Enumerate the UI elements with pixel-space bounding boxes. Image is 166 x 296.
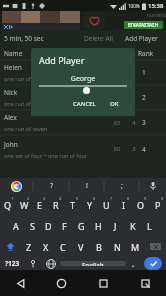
button[interactable]: Delete All: [80, 32, 117, 45]
staticText: John: [4, 140, 18, 149]
staticText: 5: [76, 196, 79, 201]
staticText: M: [131, 241, 140, 253]
staticText: ΕΓΚΑΤΑΣΤΑΣΗ: [128, 22, 159, 28]
button[interactable]: T: [64, 194, 81, 215]
button[interactable]: ;: [105, 178, 139, 194]
staticText: 4: [126, 119, 142, 127]
button[interactable]: P: [149, 194, 166, 215]
button[interactable]: D: [40, 215, 56, 236]
button[interactable]: ?: [34, 178, 69, 194]
staticText: V: [78, 241, 84, 253]
staticText: 6: [93, 196, 96, 201]
staticText: Helen: [4, 63, 22, 72]
staticText: [126, 94, 142, 102]
button[interactable]: M: [126, 236, 144, 257]
staticText: 100%: [128, 3, 140, 9]
staticText: [126, 69, 142, 77]
staticText: 3: [142, 118, 162, 127]
staticText: P: [155, 199, 161, 211]
button[interactable]: Shift: [0, 236, 20, 257]
staticText: ;: [121, 181, 123, 191]
staticText: J: [114, 220, 117, 232]
button[interactable]: Enter: [140, 257, 166, 270]
button[interactable]: OK: [106, 98, 123, 110]
button[interactable]: V: [72, 236, 90, 257]
staticText: N: [114, 241, 121, 253]
button[interactable]: Voice input: [140, 178, 166, 194]
staticText: E: [37, 199, 43, 211]
button[interactable]: Alex: [0, 110, 166, 135]
button[interactable]: I: [115, 194, 132, 215]
staticText: R: [53, 199, 59, 211]
button[interactable]: A: [8, 215, 24, 236]
button[interactable]: Add Player: [121, 32, 162, 45]
staticText: Name: [4, 49, 23, 58]
button[interactable]: Emoji: [24, 257, 42, 270]
button[interactable]: U: [98, 194, 115, 215]
staticText: Nick: [4, 88, 18, 97]
staticText: 15:38: [148, 2, 164, 10]
button[interactable]: Recent apps: [82, 270, 124, 296]
staticText: A: [13, 220, 19, 232]
button[interactable]: F: [56, 215, 73, 236]
staticText: one run of e: [4, 100, 36, 107]
button[interactable]: .: [126, 257, 140, 270]
staticText: 2: [27, 196, 30, 201]
button[interactable]: G: [73, 215, 90, 236]
button[interactable]: Back: [0, 270, 41, 296]
button[interactable]: ?123: [0, 257, 24, 270]
button[interactable]: English: [60, 261, 126, 266]
button[interactable]: Z: [20, 236, 37, 257]
button[interactable]: ΕΓΚΑΤΑΣΤΑΣΗ: [128, 22, 159, 28]
button[interactable]: Home: [41, 270, 82, 296]
button[interactable]: Screenshot: [124, 270, 166, 296]
staticText: .: [132, 258, 135, 269]
staticText: 9: [144, 196, 147, 201]
button[interactable]: Helen: [0, 60, 166, 85]
button[interactable]: Q: [0, 194, 16, 215]
button[interactable]: John: [0, 135, 166, 163]
button[interactable]: N: [108, 236, 126, 257]
button[interactable]: Y: [81, 194, 98, 215]
button[interactable]: O: [132, 194, 149, 215]
button[interactable]: C: [54, 236, 72, 257]
staticText: H: [95, 220, 102, 232]
button[interactable]: CANCEL: [69, 98, 100, 110]
staticText: one set of four + one run of four: [4, 152, 88, 159]
button[interactable]: R: [48, 194, 64, 215]
button[interactable]: E: [32, 194, 48, 215]
button[interactable]: Change language: [42, 257, 60, 270]
button[interactable]: L: [141, 215, 158, 236]
staticText: 1: [142, 68, 162, 77]
staticText: G: [78, 220, 85, 232]
button[interactable]: W: [16, 194, 32, 215]
staticText: 8: [127, 196, 130, 201]
staticText: numero: [147, 12, 166, 19]
button[interactable]: !: [70, 178, 104, 194]
button[interactable]: S: [24, 215, 40, 236]
staticText: K: [130, 220, 136, 232]
staticText: T: [70, 199, 76, 211]
staticText: ?: [50, 181, 54, 191]
button[interactable]: Nick: [0, 85, 166, 110]
staticText: O: [137, 199, 145, 211]
staticText: U: [103, 199, 110, 211]
staticText: Add Player: [39, 54, 85, 66]
staticText: 0: [161, 196, 164, 201]
staticText: W: [20, 199, 29, 211]
staticText: Y: [87, 199, 93, 211]
staticText: OK: [110, 100, 119, 108]
button[interactable]: B: [90, 236, 108, 257]
staticText: one run of e: [4, 75, 36, 82]
button[interactable]: Backspace: [144, 236, 166, 257]
staticText: 3: [126, 145, 142, 153]
button[interactable]: H: [90, 215, 107, 236]
button[interactable]: X: [37, 236, 54, 257]
staticText: Rank: [138, 49, 162, 58]
button[interactable]: J: [107, 215, 124, 236]
staticText: 65: [108, 119, 126, 127]
button[interactable]: K: [124, 215, 141, 236]
button[interactable]: Google: [0, 178, 33, 194]
staticText: George: [39, 74, 127, 84]
